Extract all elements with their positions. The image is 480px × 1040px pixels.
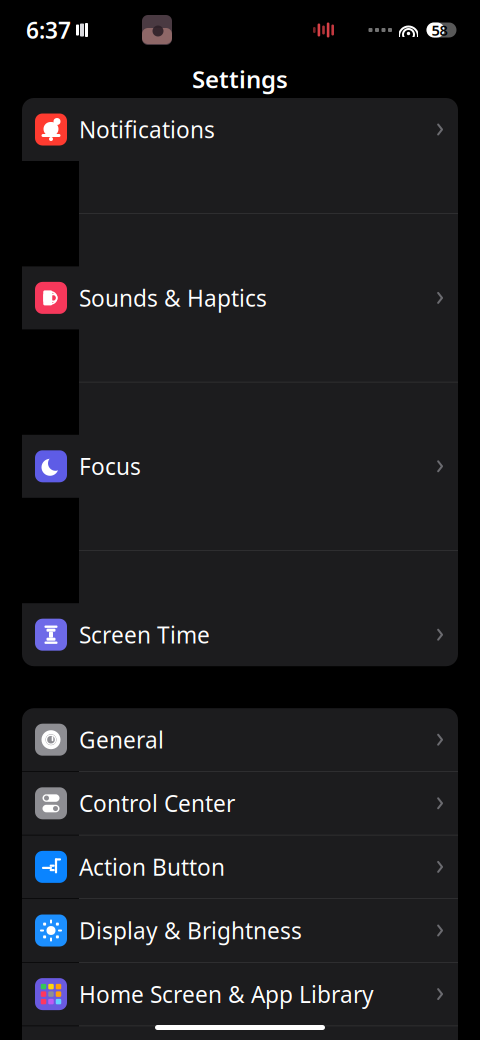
button[interactable]: Home Screen & App Library	[22, 963, 458, 1026]
staticText: Sounds & Haptics	[79, 283, 267, 313]
staticText: Notifications	[79, 114, 215, 144]
button[interactable]: General	[22, 708, 458, 772]
button[interactable]: Sounds & Haptics	[22, 266, 458, 435]
button[interactable]: Notifications	[22, 98, 458, 266]
staticText: Action Button	[79, 852, 225, 882]
staticText: Control Center	[79, 788, 235, 818]
button[interactable]: Action Button	[22, 835, 458, 899]
staticText: 6:37	[26, 15, 71, 45]
staticText: Screen Time	[79, 620, 210, 650]
button[interactable]: Accessibility	[22, 1026, 458, 1040]
staticText: Focus	[79, 451, 141, 481]
button[interactable]: Display & Brightness	[22, 899, 458, 963]
button[interactable]: Control Center	[22, 772, 458, 835]
staticText: Display & Brightness	[79, 915, 302, 945]
staticText: Settings	[192, 63, 288, 95]
button[interactable]: Focus	[22, 435, 458, 603]
button[interactable]: Screen Time	[22, 603, 458, 666]
staticText: Home Screen & App Library	[79, 979, 374, 1009]
staticText: General	[79, 725, 164, 755]
staticText: 58	[431, 20, 447, 40]
